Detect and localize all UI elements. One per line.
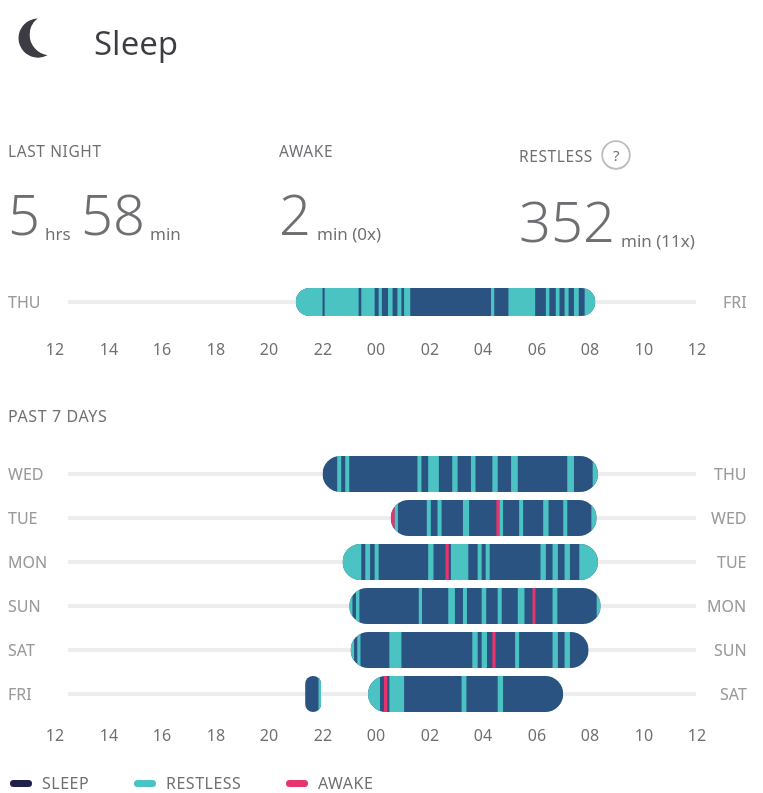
staticText: 18: [196, 338, 236, 360]
button[interactable]: TUE: [0, 506, 763, 530]
staticText: RESTLESS: [519, 145, 593, 166]
staticText: min (0x): [317, 222, 382, 245]
button[interactable]: AWAKE: [286, 772, 374, 793]
staticText: SAT: [720, 683, 747, 705]
button[interactable]: Help about restless: [601, 140, 631, 170]
button[interactable]: Sleep: [14, 14, 179, 70]
staticText: SUN: [714, 639, 747, 661]
staticText: 04: [463, 724, 503, 746]
staticText: TUE: [8, 507, 38, 529]
staticText: ?: [613, 145, 620, 165]
staticText: MON: [707, 595, 747, 617]
other: Sleep: [14, 14, 70, 70]
staticText: 352: [519, 182, 615, 258]
staticText: SLEEP: [42, 772, 90, 793]
staticText: FRI: [723, 291, 747, 313]
button[interactable]: SLEEP: [10, 772, 90, 793]
staticText: 58: [81, 175, 145, 251]
button[interactable]: SAT: [0, 638, 763, 662]
staticText: AWAKE: [279, 140, 334, 161]
staticText: 22: [303, 338, 343, 360]
staticText: 16: [142, 724, 182, 746]
staticText: 00: [356, 724, 396, 746]
staticText: 18: [196, 724, 236, 746]
staticText: 08: [570, 338, 610, 360]
staticText: 04: [463, 338, 503, 360]
staticText: 5: [8, 175, 40, 251]
staticText: FRI: [8, 683, 32, 705]
staticText: 20: [249, 724, 289, 746]
staticText: 14: [89, 338, 129, 360]
button[interactable]: LAST NIGHT: [8, 140, 181, 251]
button[interactable]: FRI: [0, 682, 763, 706]
staticText: PAST 7 DAYS: [8, 405, 108, 427]
button[interactable]: AWAKE: [279, 140, 382, 251]
staticText: 12: [35, 724, 75, 746]
staticText: 02: [410, 338, 450, 360]
staticText: LAST NIGHT: [8, 140, 102, 161]
staticText: AWAKE: [318, 772, 374, 793]
staticText: 14: [89, 724, 129, 746]
staticText: 12: [677, 338, 717, 360]
staticText: min: [150, 222, 181, 245]
staticText: 10: [624, 724, 664, 746]
button[interactable]: WED: [0, 462, 763, 486]
button[interactable]: MON: [0, 550, 763, 574]
staticText: WED: [8, 463, 44, 485]
button[interactable]: RESTLESS: [134, 772, 242, 793]
staticText: RESTLESS: [166, 772, 242, 793]
staticText: 06: [517, 724, 557, 746]
staticText: 08: [570, 724, 610, 746]
staticText: 06: [517, 338, 557, 360]
staticText: 12: [677, 724, 717, 746]
staticText: MON: [8, 551, 48, 573]
staticText: 10: [624, 338, 664, 360]
staticText: 00: [356, 338, 396, 360]
staticText: SAT: [8, 639, 35, 661]
staticText: 2: [279, 175, 311, 251]
staticText: SUN: [8, 595, 41, 617]
staticText: 16: [142, 338, 182, 360]
staticText: min (11x): [621, 229, 695, 252]
staticText: THU: [714, 463, 747, 485]
staticText: 20: [249, 338, 289, 360]
staticText: hrs: [45, 222, 71, 245]
staticText: WED: [711, 507, 747, 529]
staticText: TUE: [717, 551, 747, 573]
staticText: THU: [8, 291, 41, 313]
button[interactable]: SUN: [0, 594, 763, 618]
staticText: Sleep: [94, 20, 179, 65]
staticText: 22: [303, 724, 343, 746]
staticText: 02: [410, 724, 450, 746]
staticText: 12: [35, 338, 75, 360]
